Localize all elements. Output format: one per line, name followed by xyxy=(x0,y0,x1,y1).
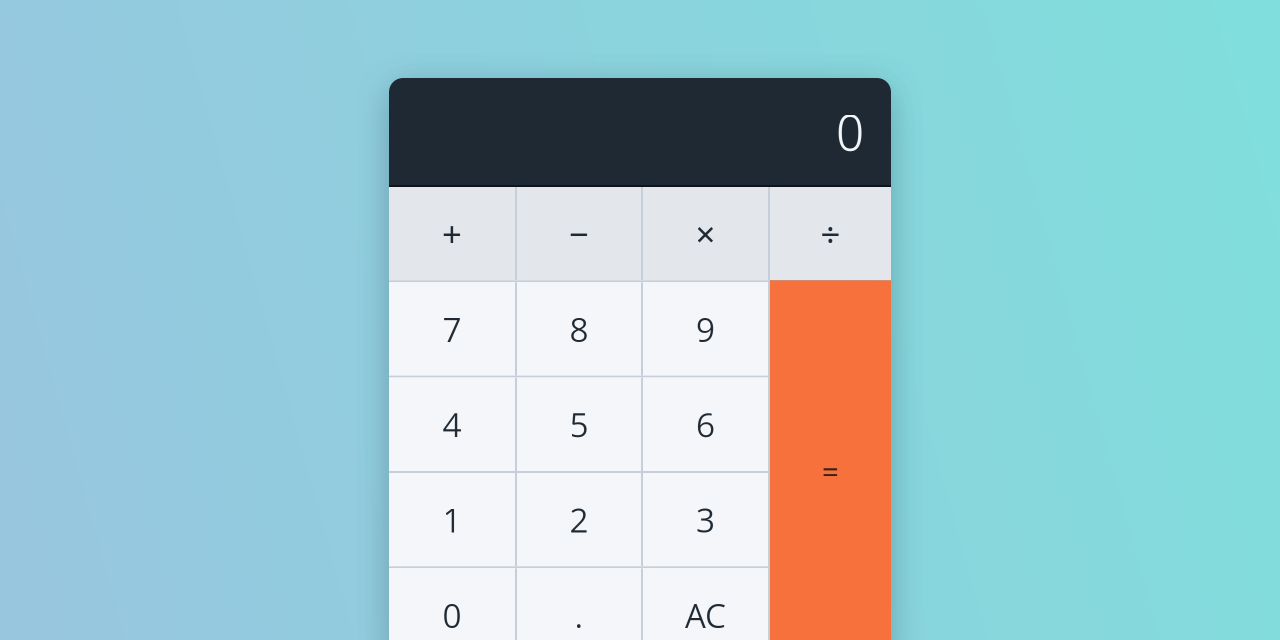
staticText: 0 xyxy=(836,98,864,165)
button[interactable]: 6 xyxy=(643,378,768,471)
button[interactable]: 4 xyxy=(389,378,515,471)
button[interactable]: Add xyxy=(389,187,515,280)
staticText: 7 xyxy=(442,306,461,352)
button[interactable]: Subtract xyxy=(517,187,641,280)
staticText: AC xyxy=(685,592,726,638)
staticText: 9 xyxy=(696,306,715,352)
button[interactable]: 8 xyxy=(517,282,641,376)
staticText: 0 xyxy=(442,592,461,638)
staticText: − xyxy=(569,210,589,257)
button[interactable]: Decimal point xyxy=(517,568,641,640)
staticText: = xyxy=(822,451,839,491)
button[interactable]: Multiply xyxy=(643,187,768,280)
button[interactable]: 5 xyxy=(517,378,641,471)
staticText: . xyxy=(574,592,583,638)
button[interactable]: 7 xyxy=(389,282,515,376)
button[interactable]: 9 xyxy=(643,282,768,376)
button[interactable]: 3 xyxy=(643,473,768,566)
button[interactable]: Equals xyxy=(770,280,891,640)
staticText: 3 xyxy=(696,497,715,542)
staticText: 8 xyxy=(569,306,588,352)
staticText: 6 xyxy=(696,402,715,447)
button[interactable]: All clear xyxy=(643,568,768,640)
staticText: 2 xyxy=(569,497,588,542)
staticText: ÷ xyxy=(820,210,840,257)
button[interactable]: Divide xyxy=(770,187,891,280)
staticText: + xyxy=(442,210,462,257)
button[interactable]: 0 xyxy=(389,568,515,640)
staticText: × xyxy=(695,210,715,257)
button[interactable]: 1 xyxy=(389,473,515,566)
button[interactable]: 2 xyxy=(517,473,641,566)
staticText: 4 xyxy=(442,402,461,447)
staticText: 5 xyxy=(569,402,588,447)
staticText: 1 xyxy=(442,497,461,542)
